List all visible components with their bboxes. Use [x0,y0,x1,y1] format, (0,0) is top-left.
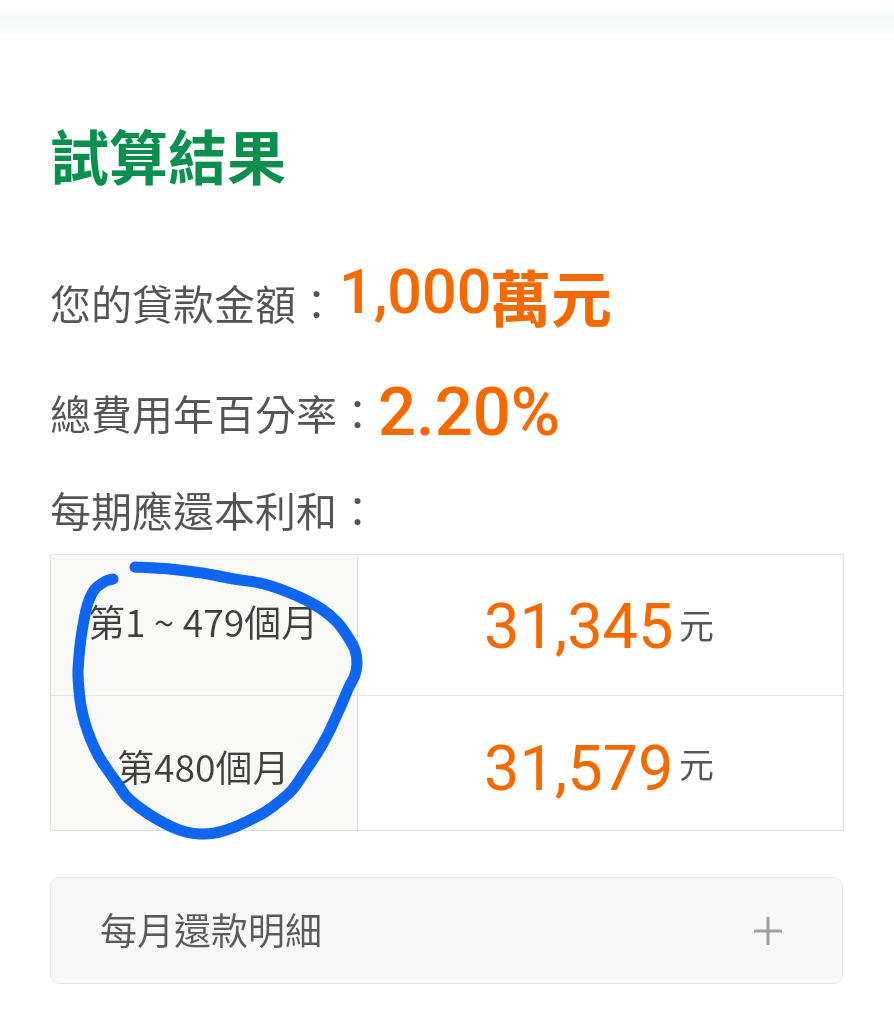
staticText: 每期應還本利和： [50,479,378,538]
staticText: 元 [679,737,715,788]
staticText: 31,579 [484,732,674,806]
staticText: 第480個月 [117,739,290,793]
staticText: 1,000 [339,256,492,327]
button[interactable]: 每月還款明細 [50,877,843,984]
staticText: 2.20% [378,373,561,452]
staticText: 萬元 [490,251,613,339]
staticText: 總費用年百分率： [50,382,378,441]
staticText: 元 [679,598,715,649]
other: Expand monthly repayment details [754,917,782,945]
staticText: 每月還款明細 [100,902,322,956]
staticText: 您的貸款金額： [50,272,337,331]
staticText: 試算結果 [50,112,287,197]
staticText: 第1 ~ 479個月 [88,594,319,648]
staticText: 31,345 [484,590,674,664]
